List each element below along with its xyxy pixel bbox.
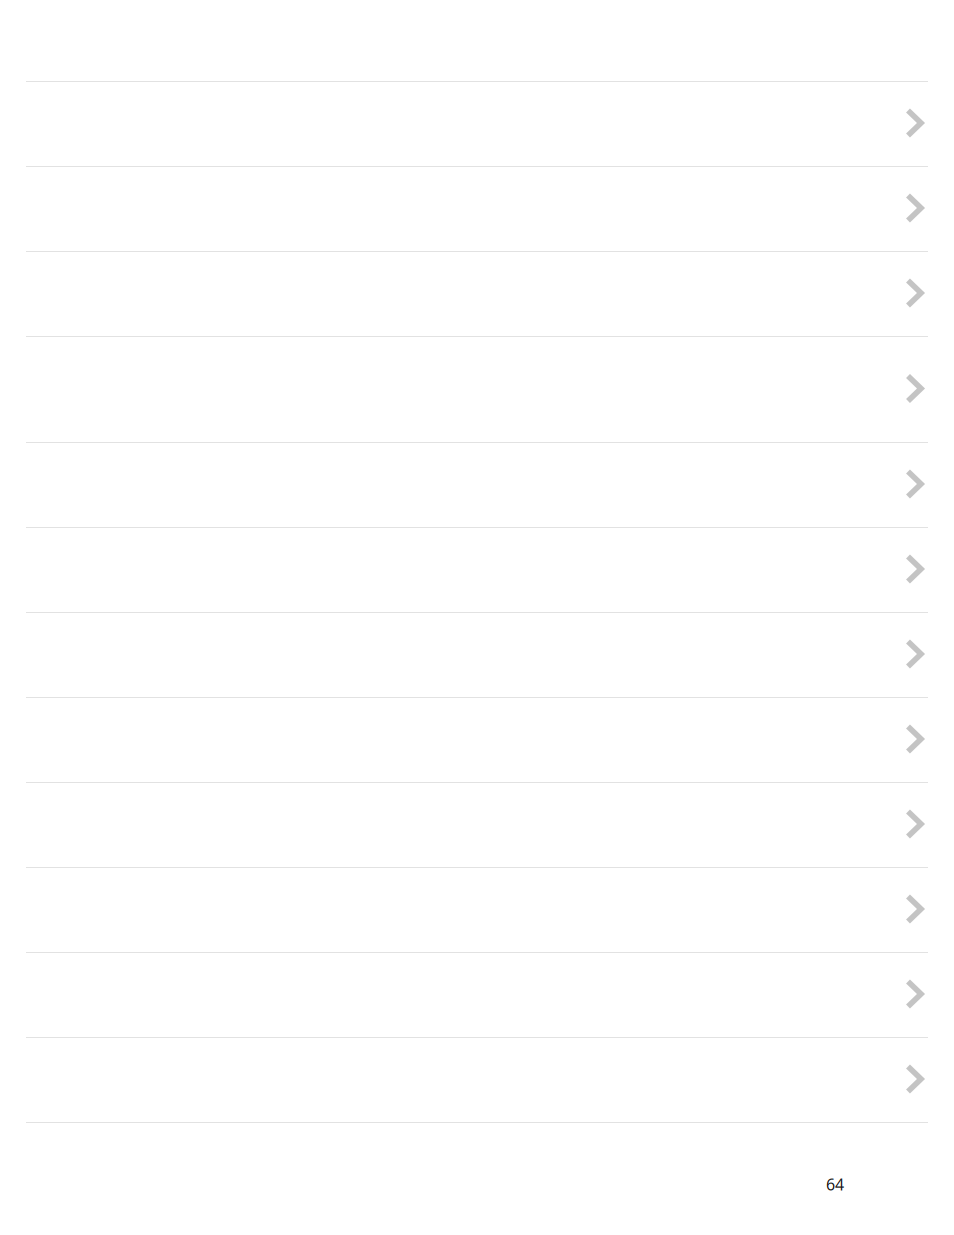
button[interactable]: Open item (0, 443, 954, 528)
button[interactable]: Open item (0, 252, 954, 337)
staticText: 64 (826, 1174, 844, 1195)
button[interactable]: Open item (0, 868, 954, 953)
button[interactable]: Open item (0, 698, 954, 783)
button[interactable]: Open item (0, 953, 954, 1038)
button[interactable]: Open item (0, 167, 954, 252)
button[interactable]: Open item (0, 1038, 954, 1123)
button[interactable]: Open item (0, 337, 954, 443)
button[interactable]: Open item (0, 613, 954, 698)
button[interactable]: Open item (0, 783, 954, 868)
button[interactable]: Open item (0, 82, 954, 167)
button[interactable]: Open item (0, 528, 954, 613)
